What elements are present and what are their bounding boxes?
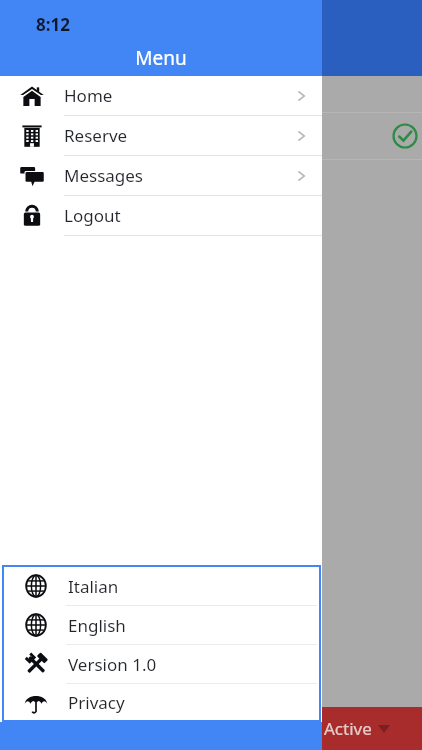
staticText: Reserve (64, 124, 292, 147)
button[interactable]: Reserve (0, 116, 322, 155)
button[interactable]: Messages (0, 156, 322, 195)
button[interactable]: English (4, 606, 319, 644)
staticText: Privacy (68, 691, 289, 714)
button[interactable]: Logout (0, 196, 322, 235)
button[interactable]: Privacy (4, 684, 319, 720)
other: Confirmed (392, 123, 418, 149)
staticText: Menu (0, 45, 322, 71)
button[interactable]: Italian (4, 567, 319, 605)
staticText: Home (64, 84, 292, 107)
button[interactable]: Version 1.0 (4, 645, 319, 683)
staticText: English (68, 614, 289, 637)
staticText: Active (324, 717, 372, 740)
staticText: 8:12 (36, 13, 70, 36)
staticText: Version 1.0 (68, 653, 289, 676)
staticText: Italian (68, 575, 289, 598)
button[interactable]: Active (310, 707, 422, 750)
staticText: Messages (64, 164, 292, 187)
staticText: Logout (64, 204, 292, 227)
button[interactable]: Home (0, 76, 322, 115)
